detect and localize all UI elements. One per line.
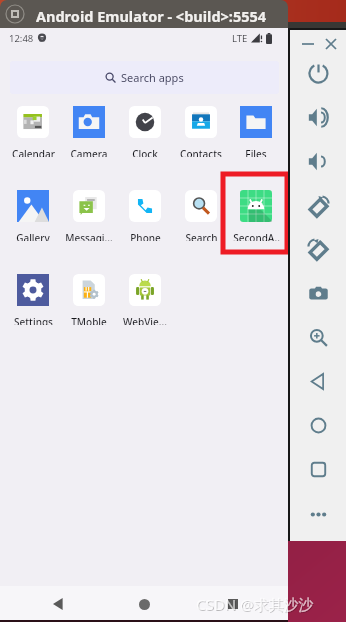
button[interactable]: Clock [117,106,173,157]
staticText: 12:48 [9,32,34,45]
button[interactable]: Contacts [173,106,229,157]
button[interactable]: Search [173,190,229,241]
button[interactable]: WebVie... [117,274,173,325]
button[interactable]: TMoble [61,274,117,325]
button[interactable]: Overview [308,459,329,480]
button[interactable]: Minimize [300,36,316,52]
staticText: Calendar [12,147,55,157]
button[interactable]: Screenshot [308,283,329,304]
staticText: Settings [14,315,53,325]
button[interactable]: Phone [117,190,173,241]
button[interactable]: Files [229,106,283,157]
button[interactable]: Settings [5,274,61,325]
button[interactable]: Home [139,599,150,610]
staticText: Gallery [16,231,50,241]
button[interactable]: SecondA.. [229,190,283,241]
button[interactable]: Home [308,415,329,436]
staticText: TMoble [71,315,107,325]
staticText: LTE [232,32,248,45]
button[interactable]: Volume down [308,151,329,172]
button[interactable]: Power [308,63,329,84]
staticText: SecondA.. [233,231,280,241]
button[interactable]: Back [308,371,329,392]
button[interactable]: Rotate right [308,239,329,260]
staticText: CSDN @求其沙沙 [197,595,315,615]
staticText: Camera [70,147,108,157]
button[interactable]: Gallery [5,190,61,241]
staticText: Search [185,231,218,241]
staticText: Contacts [180,147,222,157]
button[interactable]: Calendar [5,106,61,157]
button[interactable]: Camera [61,106,117,157]
button[interactable]: Recents [228,599,238,609]
button[interactable]: More options [308,504,329,525]
button[interactable]: Search apps [10,61,279,94]
staticText: WebVie... [123,315,167,325]
staticText: Android Emulator - <build>:5554 [36,6,267,26]
staticText: Phone [130,231,161,241]
staticText: Search apps [121,70,184,85]
button[interactable]: Rotate left [308,196,329,217]
button[interactable]: Zoom in [308,327,329,348]
staticText: Clock [132,147,158,157]
button[interactable]: Volume up [308,107,329,128]
staticText: CSDN @求其沙沙 [196,594,314,614]
staticText: Messagi... [65,231,113,241]
staticText: Files [245,147,267,157]
button[interactable]: Messagi... [61,190,117,241]
button[interactable]: Close [323,36,339,52]
button[interactable]: Back [53,598,65,610]
